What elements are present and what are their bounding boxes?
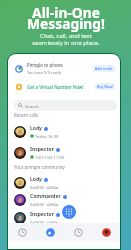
button[interactable]: Inspector: [8, 146, 120, 159]
staticText: All-in-One Messaging!: [27, 3, 105, 33]
button[interactable]: Lody: [8, 176, 120, 189]
staticText: Lody: [30, 125, 42, 132]
staticText: Inspector: [30, 146, 54, 153]
staticText: 0x0692, a266a: [30, 185, 59, 189]
staticText: Your pinngle community: [14, 164, 65, 170]
button[interactable]: Recents: [8, 223, 36, 241]
staticText: Lody: [30, 176, 42, 183]
button[interactable]: Search: [14, 100, 117, 111]
staticText: Recent calls: [14, 112, 39, 118]
button[interactable]: Commander: [8, 193, 120, 206]
button[interactable]: Calls: [36, 223, 64, 241]
button[interactable]: Buy Now!: [95, 83, 115, 90]
button[interactable]: Chats: [64, 223, 92, 241]
staticText: Search: [25, 103, 39, 109]
staticText: Commander: [30, 193, 61, 200]
staticText: Add credit: [95, 66, 113, 71]
button[interactable]: Pinngle to phone: [8, 59, 120, 78]
staticText: You have 5/5 credit: [27, 70, 62, 75]
button[interactable]: Inspector: [8, 211, 120, 224]
staticText: Pinngle to phone: [27, 62, 63, 68]
staticText: Inspector: [30, 211, 54, 218]
staticText: Buy Now!: [97, 84, 113, 89]
staticText: Get a Virtual Number Now!: [27, 84, 84, 90]
staticText: Chat, call, and text seamlessly in one p…: [32, 32, 100, 47]
button[interactable]: Get a Virtual Number Now!: [8, 79, 120, 94]
staticText: 0x0692, a266a: [30, 220, 59, 224]
staticText: 0x0692, a266a: [30, 202, 59, 206]
button[interactable]: Add credit: [93, 65, 115, 72]
staticText: 12/11/23 11:05: [35, 155, 65, 159]
button[interactable]: Dial pad: [62, 205, 76, 219]
button[interactable]: Profile: [92, 223, 120, 241]
button[interactable]: Lody: [8, 125, 120, 138]
staticText: Today 16:30: [35, 134, 59, 138]
